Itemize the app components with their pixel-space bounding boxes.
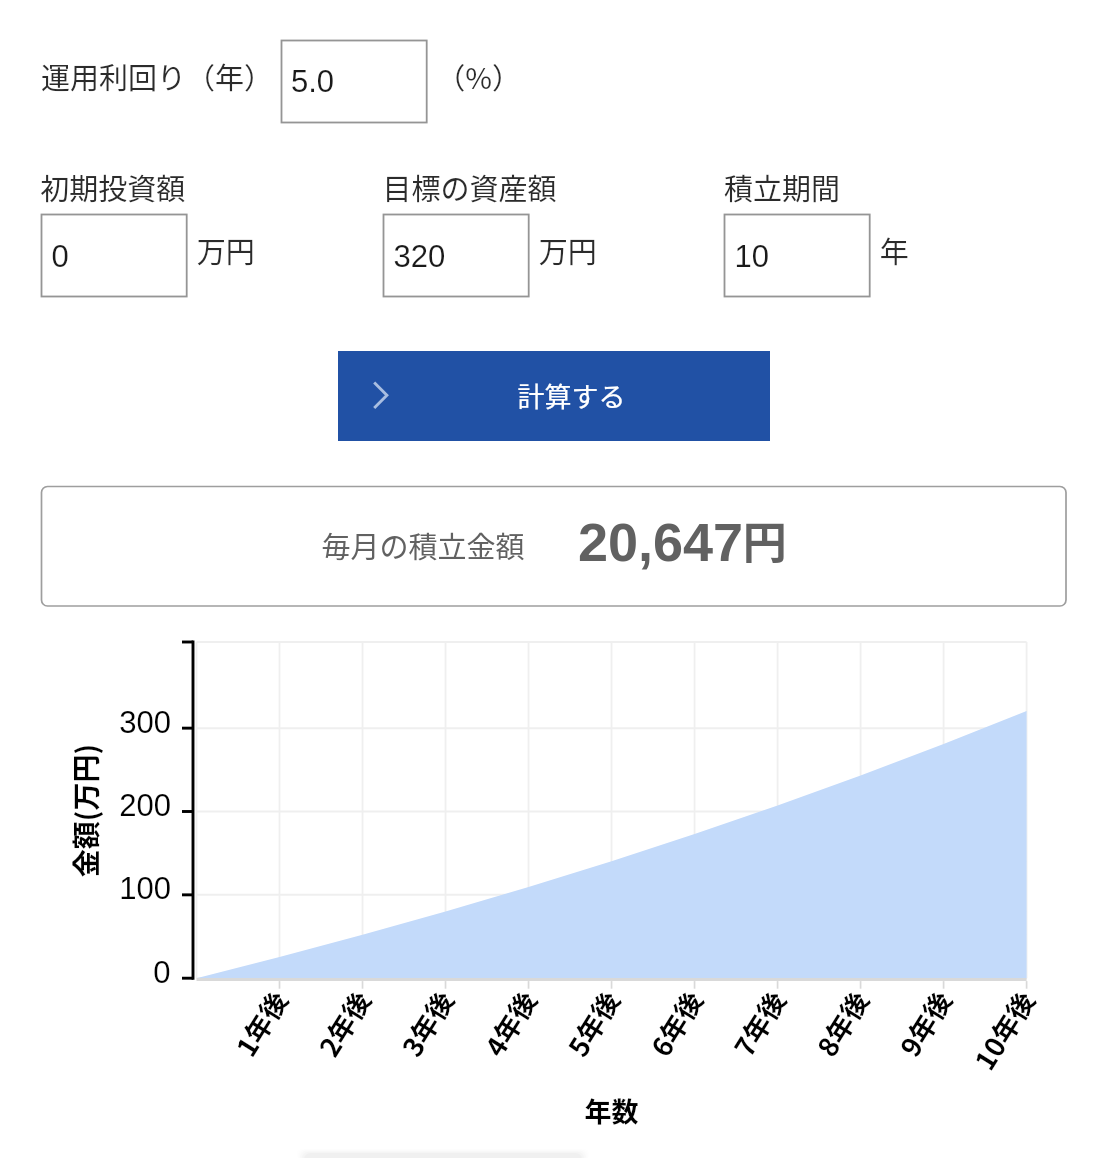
button[interactable]: 入力 [384,215,529,297]
button[interactable]: 入力 [725,215,870,297]
button[interactable]: 毎月の積立金額 20,647円 [41,486,1066,606]
button[interactable]: 入力 [42,215,187,297]
button[interactable]: 計算する [338,351,770,441]
button[interactable]: 入力 [282,41,427,123]
